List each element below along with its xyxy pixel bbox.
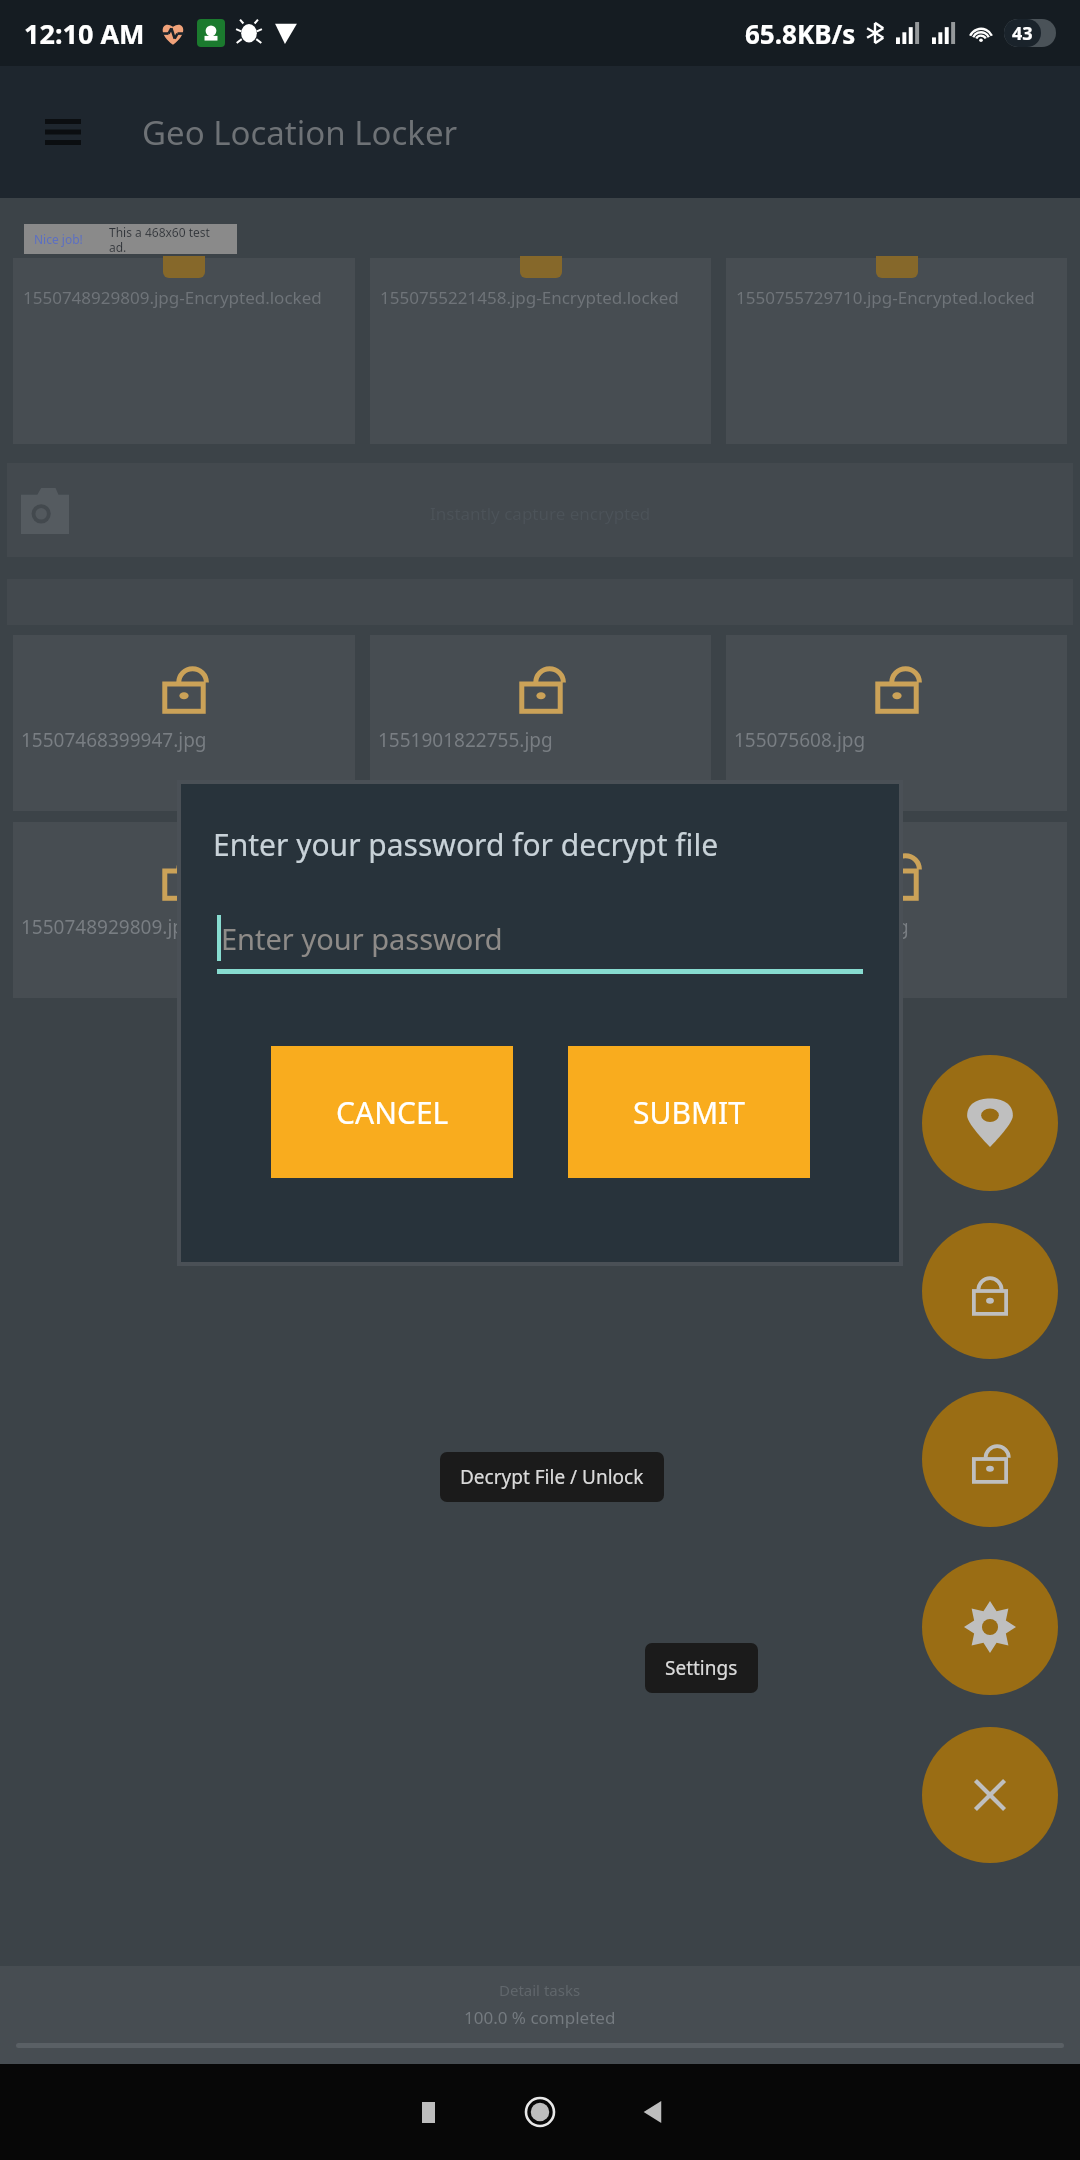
staticText: SUBMIT	[633, 1092, 745, 1133]
staticText: Enter your password for decrypt file	[213, 824, 719, 865]
button[interactable]: 1551901822755.jpg	[370, 635, 711, 811]
button[interactable]: Recent apps	[400, 2084, 456, 2140]
button[interactable]: 1550755221458.jpg-Encrypted.locked	[370, 258, 711, 444]
staticText: 1550748929809.jpg-Encrypted.locked	[23, 286, 322, 309]
staticText: 1551901822755.jpg	[378, 727, 703, 753]
button[interactable]: Home	[512, 2084, 568, 2140]
button[interactable]: Nice job!	[24, 224, 237, 254]
staticText: Enter your password	[221, 919, 503, 958]
staticText: Settings	[665, 1655, 738, 1681]
staticText: 155075608.jpg	[734, 727, 1059, 753]
staticText: 1550748929809.jpg	[21, 914, 347, 940]
button[interactable]: Open navigation drawer	[32, 101, 94, 163]
staticText: 65.8KB/s	[745, 16, 856, 51]
button[interactable]: 1550755729710.jpg-Encrypted.locked	[726, 258, 1067, 444]
staticText: 43	[1012, 21, 1033, 46]
button[interactable]: Location	[922, 1055, 1058, 1191]
staticText: 12:10 AM	[24, 15, 145, 52]
button[interactable]: 1550748929809.jpg-Encrypted.locked	[13, 258, 355, 444]
staticText: Geo Location Locker	[142, 110, 458, 155]
button[interactable]: 1550755729710.jpg	[726, 822, 1067, 998]
staticText: 1550755729710.jpg-Encrypted.locked	[736, 286, 1035, 309]
button[interactable]: Settings	[922, 1559, 1058, 1695]
button[interactable]: Back	[624, 2084, 680, 2140]
staticText: CANCEL	[336, 1092, 449, 1133]
staticText: Detail tasks	[499, 1980, 581, 2000]
button[interactable]: Encrypt file lock	[922, 1223, 1058, 1359]
button[interactable]: 15507468399947.jpg	[13, 635, 355, 811]
button[interactable]: SUBMIT	[568, 1046, 810, 1178]
button[interactable]: 155075608.jpg	[726, 635, 1067, 811]
button[interactable]: CANCEL	[271, 1046, 513, 1178]
staticText: 15507468399947.jpg	[21, 727, 347, 753]
staticText: This a 468x60 test ad.	[109, 224, 227, 254]
button[interactable]: Close menu	[922, 1727, 1058, 1863]
staticText: 1550755221458.jpg-Encrypted.locked	[380, 286, 679, 309]
staticText: 1550755729710.jpg	[734, 914, 1059, 940]
button[interactable]: 1550748929809.jpg	[13, 822, 355, 998]
button[interactable]: 1550755221458.jpg	[370, 822, 711, 998]
button[interactable]: Enter your password	[217, 915, 863, 974]
button[interactable]: Settings	[645, 1643, 758, 1693]
staticText: 1550755221458.jpg	[378, 914, 703, 940]
staticText: Nice job!	[34, 231, 83, 247]
staticText: 100.0 % completed	[464, 2006, 616, 2029]
staticText: Decrypt File / Unlock	[460, 1464, 644, 1490]
button[interactable]: Decrypt File Unlock	[922, 1391, 1058, 1527]
button[interactable]: Decrypt File / Unlock	[440, 1452, 664, 1502]
